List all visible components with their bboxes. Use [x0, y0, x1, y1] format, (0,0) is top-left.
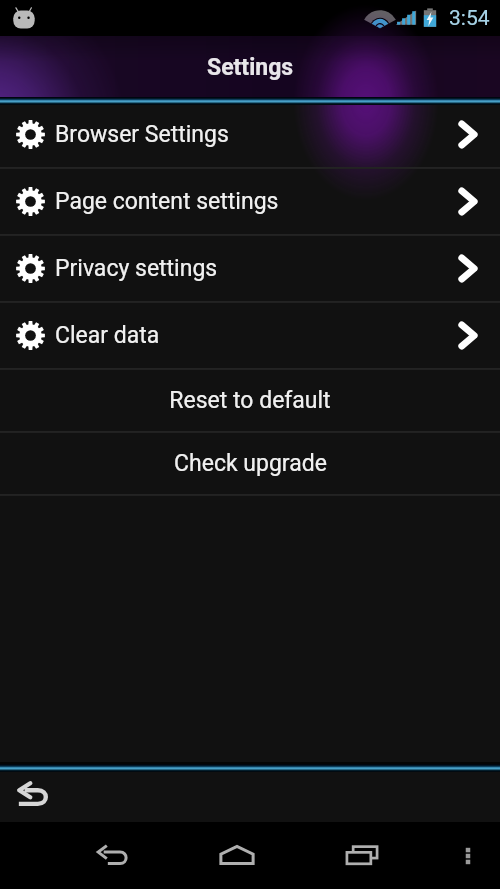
staticText: Settings [207, 54, 294, 81]
button[interactable]: More options [450, 838, 486, 874]
staticText: Check upgrade [174, 450, 327, 477]
button[interactable]: Page content settings [0, 169, 500, 234]
staticText: 3:54 [449, 6, 490, 31]
button[interactable]: Back [86, 830, 138, 882]
button[interactable]: Browser Settings [0, 101, 500, 167]
button[interactable]: Check upgrade [0, 433, 500, 494]
button[interactable]: Privacy settings [0, 236, 500, 301]
button[interactable]: Clear data [0, 303, 500, 368]
staticText: Clear data [55, 322, 160, 349]
staticText: Privacy settings [55, 255, 218, 282]
button[interactable]: Back [12, 776, 50, 814]
button[interactable]: Recent apps [336, 830, 388, 882]
staticText: Reset to default [169, 387, 331, 414]
button[interactable]: Home [211, 830, 263, 882]
staticText: Page content settings [55, 188, 279, 215]
staticText: Browser Settings [55, 121, 229, 148]
button[interactable]: Reset to default [0, 370, 500, 431]
